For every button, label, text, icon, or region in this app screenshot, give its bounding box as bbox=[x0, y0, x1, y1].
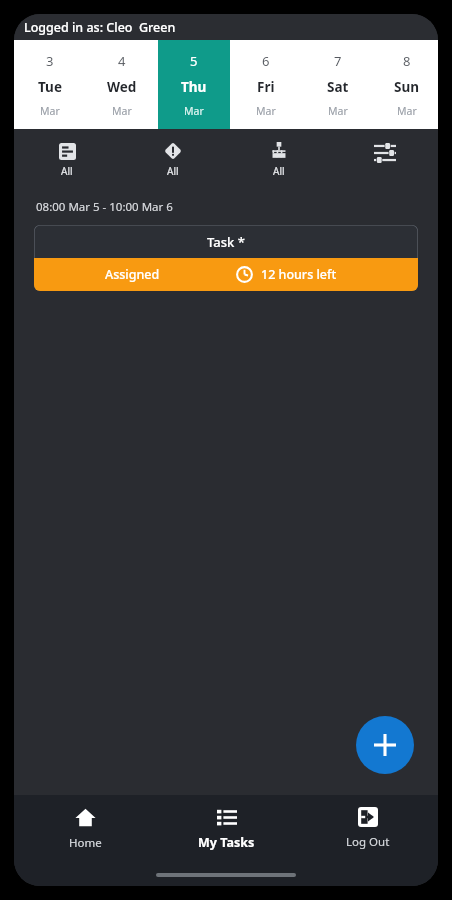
staticText: 3 bbox=[46, 52, 54, 70]
staticText: All bbox=[61, 164, 73, 178]
staticText: 6 bbox=[262, 52, 270, 70]
staticText: 5 bbox=[190, 52, 198, 70]
button[interactable]: 4 bbox=[86, 40, 158, 129]
button[interactable]: 3 bbox=[14, 40, 86, 129]
staticText: My Tasks bbox=[198, 834, 255, 851]
staticText: Assigned bbox=[105, 266, 160, 283]
button[interactable]: Filter by team bbox=[226, 129, 332, 191]
staticText: 8 bbox=[403, 52, 411, 70]
staticText: Mar bbox=[256, 104, 276, 118]
button[interactable]: 5 bbox=[158, 40, 230, 129]
staticText: Mar bbox=[112, 104, 132, 118]
button[interactable]: Settings bbox=[332, 129, 438, 191]
button[interactable]: Add task bbox=[356, 716, 414, 774]
staticText: Sat bbox=[327, 78, 349, 96]
staticText: All bbox=[273, 164, 285, 178]
button[interactable]: Log Out bbox=[297, 807, 438, 886]
staticText: Task * bbox=[207, 233, 245, 251]
button[interactable]: Filter by priority bbox=[120, 129, 226, 191]
staticText: All bbox=[167, 164, 179, 178]
button[interactable]: 6 bbox=[230, 40, 302, 129]
staticText: Sun bbox=[394, 78, 419, 96]
staticText: Fri bbox=[257, 78, 275, 96]
staticText: 4 bbox=[118, 52, 126, 70]
button[interactable]: 8 bbox=[374, 40, 438, 129]
staticText: Thu bbox=[181, 78, 207, 96]
staticText: Mar bbox=[328, 104, 348, 118]
staticText: Mar bbox=[184, 104, 204, 118]
button[interactable]: My Tasks bbox=[156, 807, 297, 886]
staticText: Mar bbox=[40, 104, 60, 118]
staticText: 7 bbox=[334, 52, 342, 70]
button[interactable]: Filter by list bbox=[14, 129, 120, 191]
staticText: Home bbox=[69, 835, 102, 851]
button[interactable]: 7 bbox=[302, 40, 374, 129]
staticText: Logged in as: Cleo Green bbox=[24, 19, 176, 36]
staticText: 12 hours left bbox=[261, 266, 337, 283]
staticText: 08:00 Mar 5 - 10:00 Mar 6 bbox=[36, 199, 173, 215]
button[interactable]: Task * bbox=[34, 225, 418, 291]
staticText: Wed bbox=[107, 78, 137, 96]
staticText: Log Out bbox=[346, 834, 390, 850]
staticText: Tue bbox=[38, 78, 62, 96]
button[interactable]: Home bbox=[14, 807, 156, 886]
staticText: Mar bbox=[397, 104, 417, 118]
